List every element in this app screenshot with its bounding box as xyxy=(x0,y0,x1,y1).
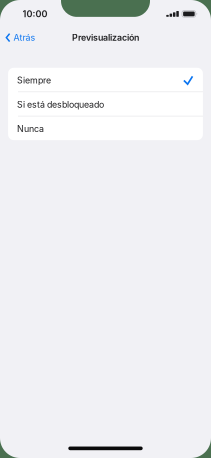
staticText: Si está desbloqueado xyxy=(17,99,104,110)
button[interactable]: Nunca xyxy=(8,116,203,140)
staticText: 10:00 xyxy=(22,8,47,19)
staticText: Atrás xyxy=(13,32,35,43)
button[interactable]: Siempre xyxy=(8,68,203,91)
button[interactable]: Atrás xyxy=(0,29,39,46)
staticText: Siempre xyxy=(17,75,51,85)
staticText: Previsualización xyxy=(72,32,139,43)
staticText: Nunca xyxy=(17,123,44,134)
button[interactable]: Si está desbloqueado xyxy=(8,92,203,116)
